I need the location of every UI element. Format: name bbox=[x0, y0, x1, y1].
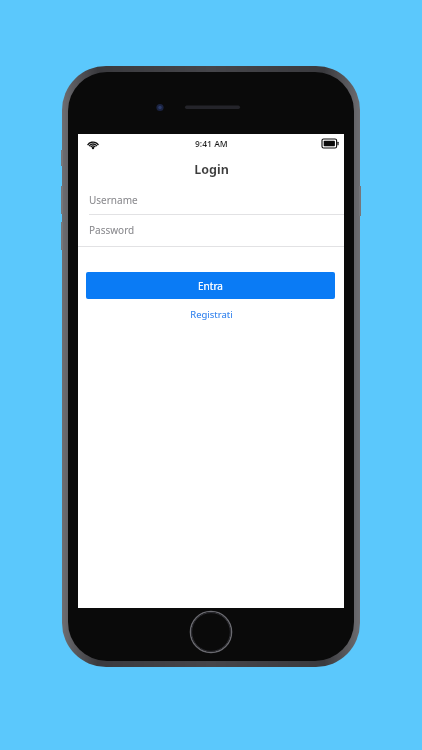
button[interactable]: Password bbox=[78, 216, 344, 244]
staticText: 9:41 AM bbox=[195, 138, 228, 150]
staticText: Login bbox=[194, 161, 229, 178]
button[interactable]: Username bbox=[78, 186, 344, 214]
staticText: Registrati bbox=[190, 308, 233, 321]
button[interactable]: Registrati bbox=[78, 304, 344, 324]
staticText: Entra bbox=[198, 279, 223, 293]
other: Wi-Fi signal bbox=[86, 138, 100, 150]
other: Battery full bbox=[322, 139, 339, 148]
other: Home bbox=[190, 611, 232, 653]
staticText: Password bbox=[89, 223, 135, 237]
button[interactable]: Entra bbox=[86, 272, 335, 299]
staticText: Username bbox=[89, 193, 138, 207]
